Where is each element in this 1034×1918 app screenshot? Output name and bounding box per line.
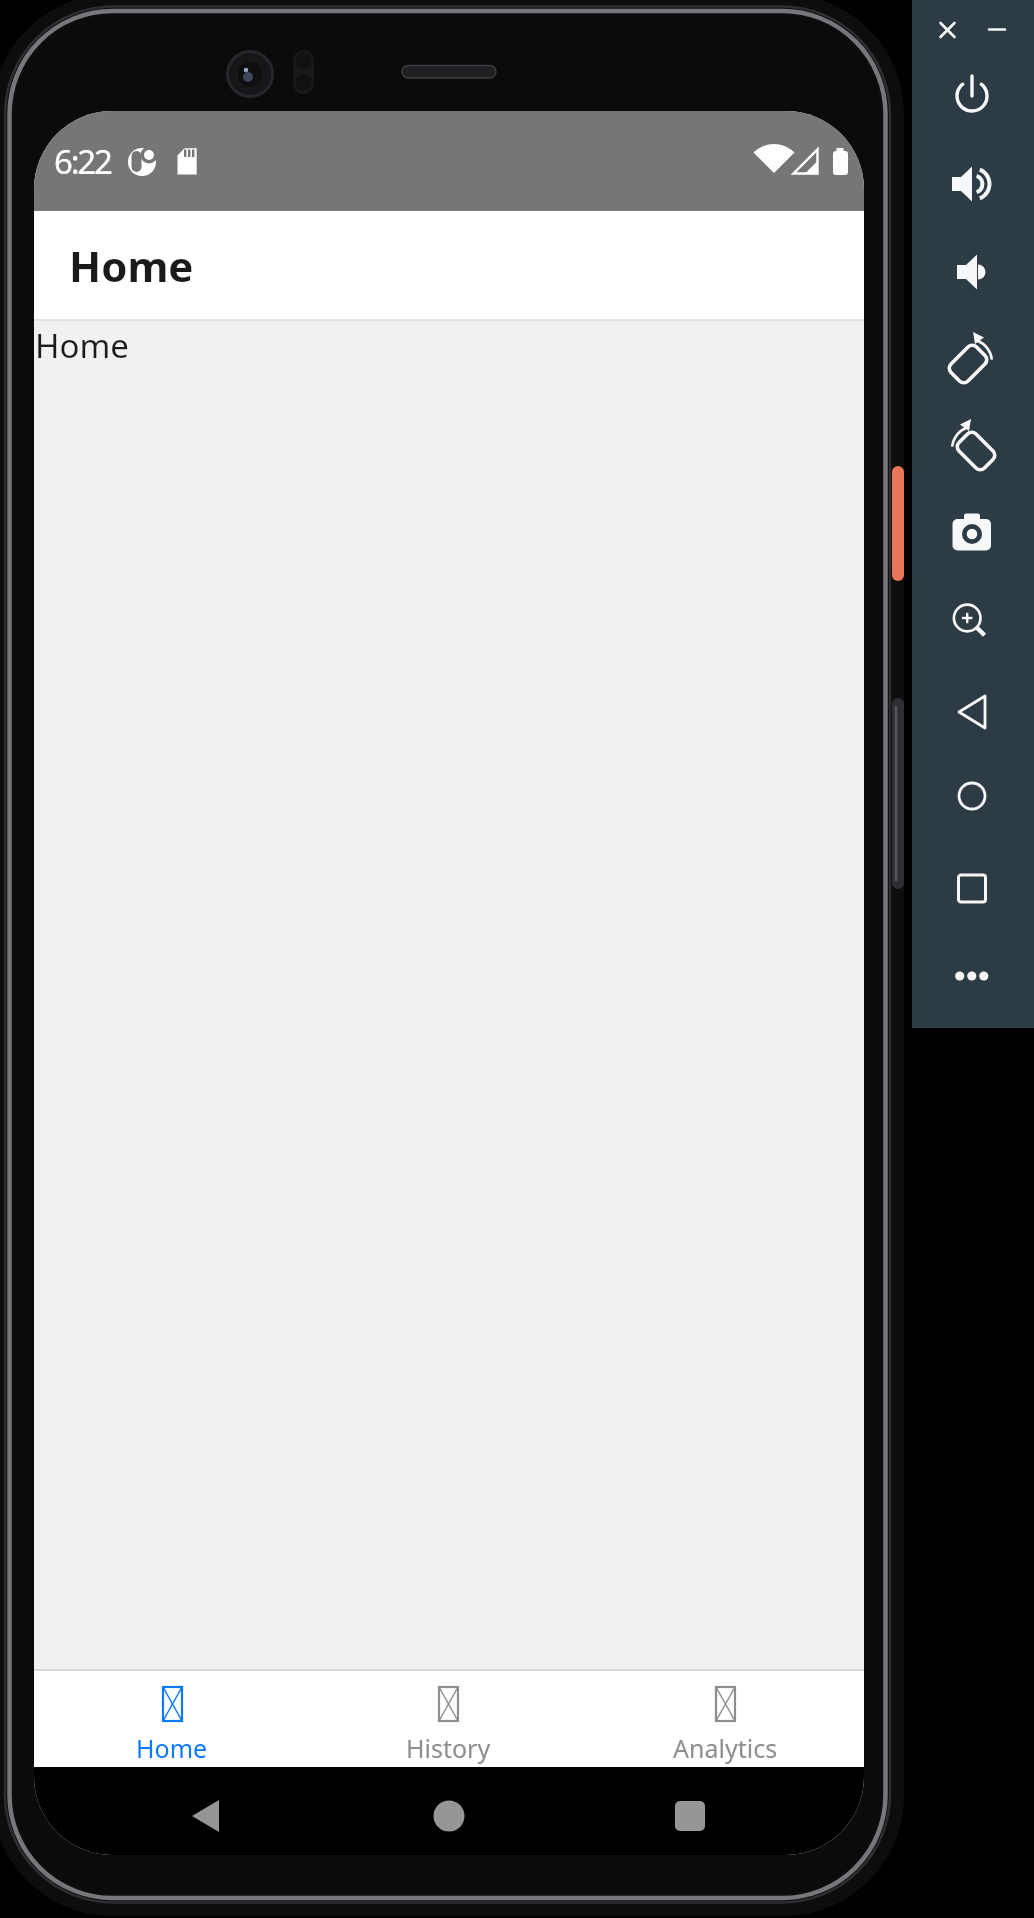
button[interactable] [944, 590, 1000, 646]
button[interactable] [925, 8, 969, 52]
button[interactable] [944, 244, 1000, 300]
button[interactable] [944, 948, 1000, 1004]
button[interactable] [944, 506, 1000, 562]
button[interactable] [944, 332, 1000, 388]
button[interactable]: Analytics [587, 1671, 864, 1767]
button[interactable] [944, 683, 1000, 739]
button[interactable]: History [310, 1671, 587, 1767]
staticText: Home [35, 323, 129, 368]
button[interactable] [944, 156, 1000, 212]
button[interactable] [660, 1786, 720, 1846]
staticText: Home [69, 237, 194, 294]
button[interactable] [944, 419, 1000, 475]
button[interactable] [944, 768, 1000, 824]
button[interactable] [944, 861, 1000, 917]
button[interactable] [944, 68, 1000, 124]
staticText: History [406, 1731, 491, 1765]
staticText: Analytics [673, 1731, 778, 1765]
staticText: Home [136, 1731, 208, 1765]
button[interactable] [175, 1786, 235, 1846]
staticText: 6:22 [54, 139, 111, 184]
button[interactable] [419, 1786, 479, 1846]
button[interactable] [975, 8, 1019, 52]
button[interactable]: Home [34, 1671, 310, 1767]
